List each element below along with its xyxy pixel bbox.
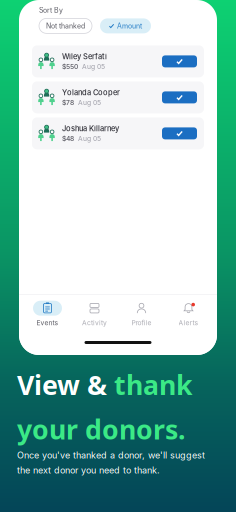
staticText: Aug 05 bbox=[78, 99, 101, 107]
button[interactable]: Thank Wiley Serfati bbox=[162, 55, 197, 67]
staticText: Aug 05 bbox=[78, 135, 101, 143]
staticText: Aug 05 bbox=[82, 63, 105, 71]
staticText: Once you've thanked a donor, we'll sugge… bbox=[17, 450, 205, 461]
staticText: Sort By bbox=[39, 6, 63, 14]
staticText: $550 bbox=[62, 63, 78, 71]
button[interactable]: Amount bbox=[100, 18, 151, 33]
staticText: your donors. bbox=[17, 411, 185, 447]
button[interactable]: Events bbox=[24, 301, 71, 327]
button[interactable]: Not thanked bbox=[39, 18, 92, 33]
staticText: Wiley Serfati bbox=[62, 52, 107, 61]
staticText: Profile bbox=[131, 319, 151, 327]
staticText: View & bbox=[17, 367, 114, 402]
staticText: Activity bbox=[82, 319, 107, 327]
staticText: $48 bbox=[62, 135, 74, 143]
button[interactable]: Thank Joshua Killarney bbox=[162, 127, 197, 139]
button[interactable]: Thank Yolanda Cooper bbox=[162, 91, 197, 103]
staticText: Not thanked bbox=[46, 22, 85, 30]
staticText: Events bbox=[36, 319, 58, 327]
staticText: the next donor you need to thank. bbox=[17, 465, 160, 476]
staticText: Joshua Killarney bbox=[62, 124, 119, 133]
staticText: thank bbox=[114, 367, 193, 402]
button[interactable]: Alerts bbox=[165, 301, 212, 327]
staticText: $78 bbox=[62, 99, 74, 107]
staticText: Amount bbox=[117, 22, 142, 30]
button[interactable]: Activity bbox=[71, 301, 118, 327]
staticText: Yolanda Cooper bbox=[62, 88, 120, 97]
staticText: Alerts bbox=[178, 319, 198, 327]
button[interactable]: Profile bbox=[118, 301, 165, 327]
